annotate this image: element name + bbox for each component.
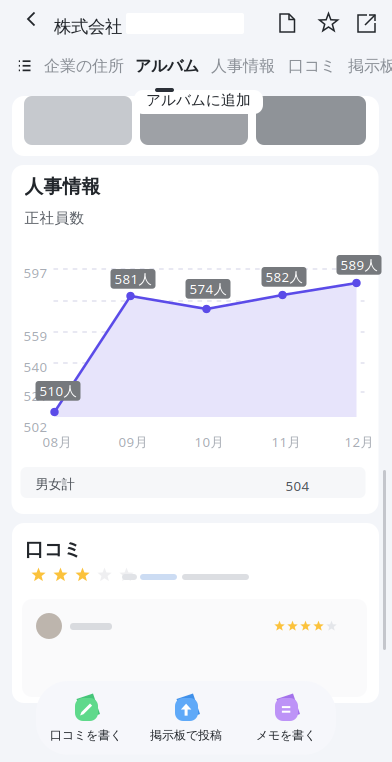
staticText: 10月 [194, 433, 223, 451]
staticText: メモを書く [256, 728, 316, 743]
button[interactable]: 企業の住所 [38, 46, 130, 86]
button[interactable]: Document [269, 3, 306, 43]
button[interactable]: Back [14, 0, 49, 38]
staticText: 502 [23, 418, 47, 436]
button[interactable]: メモを書く [236, 693, 336, 743]
button[interactable]: アルバムに追加 [134, 90, 263, 114]
button[interactable]: Share [347, 4, 386, 43]
staticText: 504 [285, 477, 309, 495]
staticText: 掲示板で投稿 [150, 728, 222, 743]
button[interactable]: 掲示板で投稿 [136, 693, 236, 743]
staticText: 559 [23, 327, 47, 345]
staticText: 人事情報 [24, 175, 100, 198]
staticText: 掲示板 [348, 56, 392, 76]
staticText: 09月 [118, 433, 147, 451]
staticText: アルバム [135, 56, 199, 76]
staticText: 12月 [344, 433, 373, 451]
staticText: 581人 [114, 270, 151, 288]
staticText: 株式会社 [54, 16, 122, 37]
staticText: アルバムに追加 [146, 91, 251, 109]
button[interactable]: 口コミを書く [36, 693, 136, 743]
staticText: 589人 [340, 256, 377, 274]
button[interactable]: Favorite [308, 3, 349, 43]
staticText: 574人 [189, 280, 226, 298]
button[interactable]: アルバム [129, 46, 205, 86]
staticText: 口コミ [288, 56, 336, 76]
button[interactable]: Menu [12, 48, 37, 83]
staticText: 正社員数 [24, 209, 84, 227]
staticText: 582人 [265, 268, 302, 286]
staticText: 11月 [271, 433, 300, 451]
staticText: 540 [23, 358, 47, 376]
staticText: 口コミ [25, 538, 82, 561]
staticText: 企業の住所 [44, 56, 124, 76]
staticText: 人事情報 [211, 56, 275, 76]
staticText: 08月 [42, 433, 71, 451]
button[interactable]: 人事情報 [205, 46, 281, 86]
staticText: 口コミを書く [50, 728, 122, 743]
button[interactable]: 掲示板 [342, 46, 392, 86]
staticText: 521 [23, 387, 47, 405]
staticText: 男女計 [35, 476, 74, 492]
button[interactable]: 口コミ [282, 46, 342, 86]
staticText: 510人 [39, 382, 76, 400]
staticText: 597 [23, 264, 47, 282]
